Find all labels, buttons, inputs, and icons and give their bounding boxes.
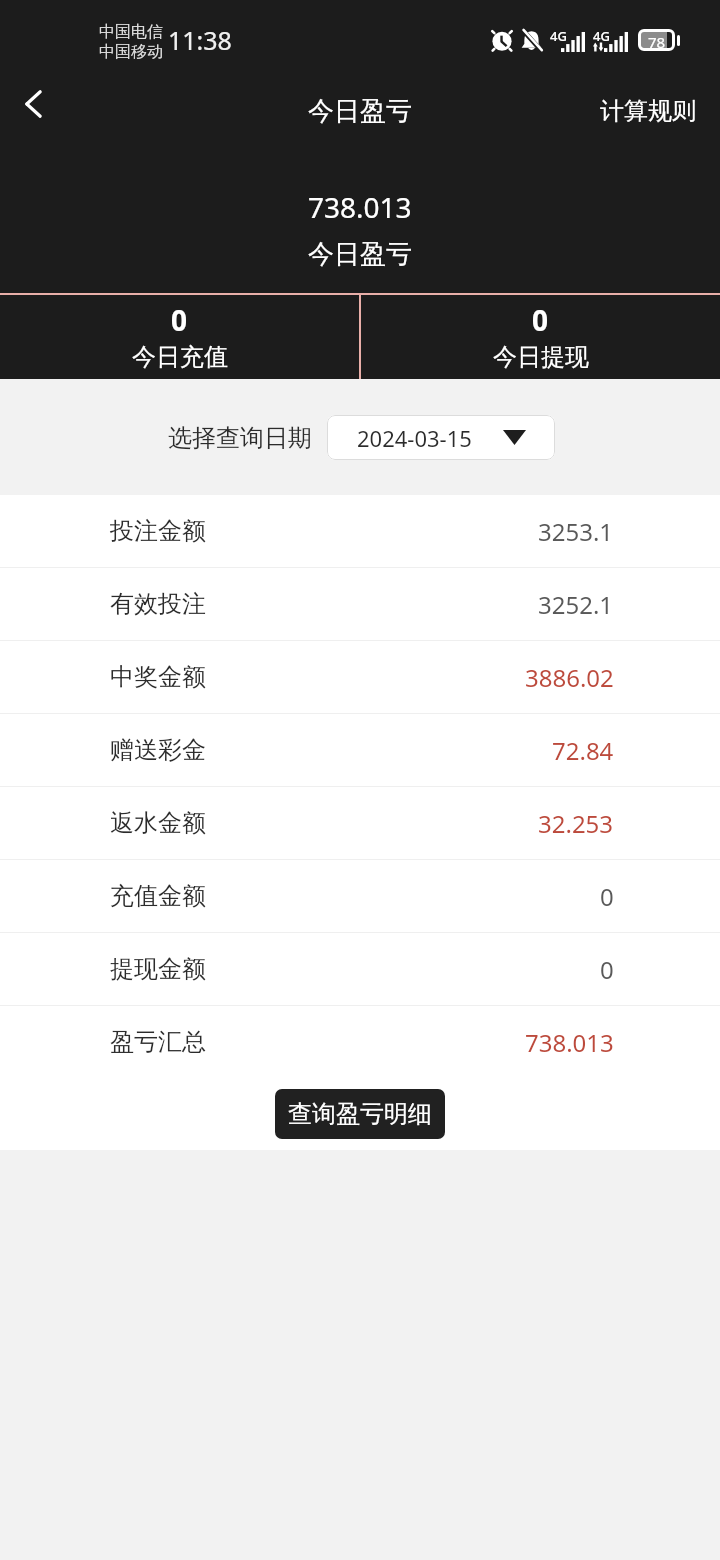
staticText: 投注金额 bbox=[110, 516, 206, 546]
staticText: 选择查询日期 bbox=[168, 423, 312, 453]
staticText: 充值金额 bbox=[110, 881, 206, 911]
staticText: 0 bbox=[600, 953, 614, 986]
staticText: 提现金额 bbox=[110, 954, 206, 984]
button[interactable]: 盈亏汇总 bbox=[0, 1006, 720, 1078]
staticText: 11:38 bbox=[168, 23, 232, 57]
staticText: 中奖金额 bbox=[110, 662, 206, 692]
staticText: 738.013 bbox=[525, 1026, 614, 1059]
staticText: 3886.02 bbox=[525, 661, 614, 694]
staticText: 查询盈亏明细 bbox=[288, 1099, 432, 1129]
staticText: 0 bbox=[600, 880, 614, 913]
button[interactable]: 返水金额 bbox=[0, 787, 720, 859]
button[interactable]: 提现金额 bbox=[0, 933, 720, 1005]
button[interactable]: Back bbox=[0, 76, 66, 146]
staticText: 今日盈亏 bbox=[308, 95, 412, 128]
staticText: 今日盈亏 bbox=[308, 238, 412, 271]
button[interactable]: 2024-03-15 bbox=[327, 415, 555, 460]
staticText: 72.84 bbox=[552, 734, 614, 767]
staticText: 78 bbox=[648, 32, 666, 48]
staticText: 计算规则 bbox=[600, 96, 696, 126]
staticText: 0 bbox=[171, 301, 188, 339]
staticText: 3252.1 bbox=[538, 588, 614, 621]
staticText: 738.013 bbox=[308, 188, 412, 226]
staticText: 今日提现 bbox=[493, 342, 589, 372]
button[interactable]: 0 bbox=[361, 295, 720, 379]
staticText: 4G bbox=[593, 27, 610, 45]
staticText: 4G bbox=[550, 27, 567, 45]
staticText: 3253.1 bbox=[538, 515, 614, 548]
staticText: 0 bbox=[532, 301, 549, 339]
button[interactable]: 投注金额 bbox=[0, 495, 720, 567]
staticText: 中国移动 bbox=[99, 42, 163, 62]
button[interactable]: 赠送彩金 bbox=[0, 714, 720, 786]
staticText: 2024-03-15 bbox=[357, 423, 472, 453]
staticText: 有效投注 bbox=[110, 589, 206, 619]
button[interactable]: 充值金额 bbox=[0, 860, 720, 932]
staticText: 中国电信 bbox=[99, 22, 163, 42]
button[interactable]: 查询盈亏明细 bbox=[275, 1089, 445, 1139]
button[interactable]: 计算规则 bbox=[586, 76, 720, 146]
staticText: 今日充值 bbox=[132, 342, 228, 372]
button[interactable]: 0 bbox=[0, 295, 359, 379]
staticText: 返水金额 bbox=[110, 808, 206, 838]
staticText: 盈亏汇总 bbox=[110, 1027, 206, 1057]
staticText: 32.253 bbox=[538, 807, 614, 840]
staticText: 赠送彩金 bbox=[110, 735, 206, 765]
button[interactable]: 中奖金额 bbox=[0, 641, 720, 713]
button[interactable]: 有效投注 bbox=[0, 568, 720, 640]
